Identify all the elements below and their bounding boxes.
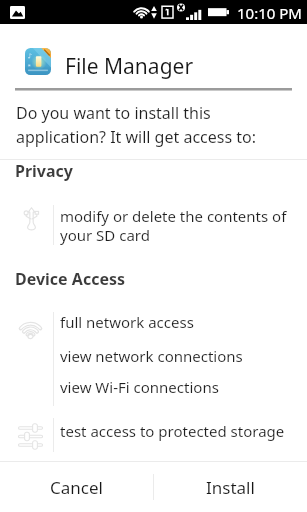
staticText: view Wi-Fi connections [60, 377, 219, 397]
staticText: Install [206, 476, 255, 499]
other: Screenshot captured [10, 6, 25, 19]
button[interactable]: Cancel [0, 462, 153, 512]
staticText: Privacy [15, 160, 73, 182]
other: Protected storage permission [18, 424, 43, 449]
other: USB storage permission [21, 207, 42, 231]
staticText: view network connections [60, 346, 243, 366]
other: Network permission [19, 316, 42, 339]
staticText: Device Access [15, 268, 126, 290]
staticText: 10:10 PM [237, 3, 302, 23]
staticText: modify or delete the contents of your SD… [60, 206, 287, 245]
staticText: full network access [60, 312, 194, 332]
button[interactable]: Install [154, 462, 307, 512]
staticText: File Manager [65, 52, 194, 81]
staticText: Cancel [50, 476, 103, 499]
staticText: test access to protected storage [60, 421, 285, 441]
staticText: Do you want to install this application?… [16, 102, 257, 148]
